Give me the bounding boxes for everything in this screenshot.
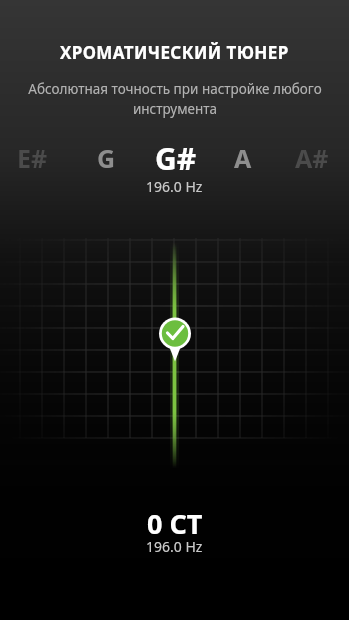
- button[interactable]: G#: [155, 138, 197, 179]
- staticText: 196.0 Hz: [146, 537, 203, 556]
- staticText: Абсолютная точность при настройке любого…: [28, 80, 322, 118]
- staticText: ХРОМАТИЧЕСКИЙ ТЮНЕР: [60, 41, 289, 64]
- button[interactable]: E#: [17, 141, 48, 175]
- button[interactable]: A: [234, 141, 252, 175]
- button[interactable]: A#: [295, 141, 329, 175]
- staticText: 196.0 Hz: [146, 177, 203, 196]
- button[interactable]: G: [97, 141, 116, 175]
- staticText: 0 CT: [147, 505, 203, 542]
